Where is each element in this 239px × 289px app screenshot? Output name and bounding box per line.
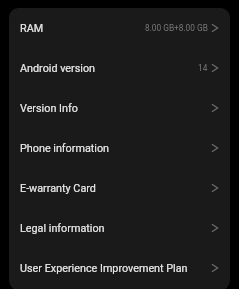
button[interactable]: Version Info — [9, 88, 230, 128]
staticText: E-warranty Card — [20, 182, 96, 195]
button[interactable]: Android version — [9, 48, 230, 88]
staticText: Legal information — [20, 222, 105, 235]
staticText: 8.00 GB+8.00 GB — [145, 23, 208, 33]
staticText: User Experience Improvement Plan — [20, 262, 188, 275]
staticText: Version Info — [20, 102, 78, 115]
staticText: 14 — [198, 63, 208, 73]
staticText: RAM — [20, 22, 44, 35]
staticText: Phone information — [20, 142, 110, 155]
button[interactable]: Phone information — [9, 128, 230, 168]
button[interactable]: E-warranty Card — [9, 168, 230, 208]
button[interactable]: Legal information — [9, 208, 230, 248]
button[interactable]: RAM — [9, 8, 230, 48]
staticText: Android version — [20, 62, 96, 75]
button[interactable]: User Experience Improvement Plan — [9, 248, 230, 288]
